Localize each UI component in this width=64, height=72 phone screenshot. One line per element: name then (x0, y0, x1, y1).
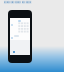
button[interactable] (4, 0, 32, 5)
button[interactable] (14, 35, 19, 37)
